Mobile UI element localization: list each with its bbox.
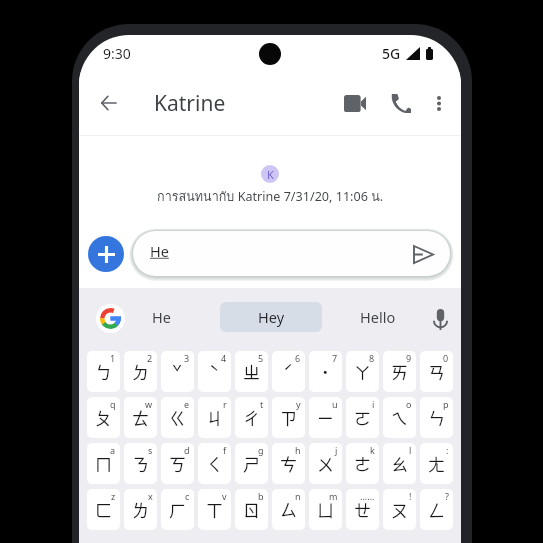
staticText: ㄠ <box>391 451 408 476</box>
staticText: ...... <box>360 490 375 502</box>
staticText: 1 <box>110 352 116 364</box>
staticText: ㄣ <box>428 405 445 430</box>
staticText: c <box>185 490 190 502</box>
button[interactable]: ㄏ <box>161 489 194 530</box>
staticText: r <box>223 398 227 410</box>
button[interactable]: ㄚ <box>346 351 379 392</box>
button[interactable]: ˙ <box>309 351 342 392</box>
staticText: u <box>332 398 338 410</box>
button[interactable]: ㄍ <box>161 397 194 438</box>
staticText: ㄐ <box>206 405 223 430</box>
staticText: j <box>335 444 338 456</box>
staticText: l <box>409 444 412 456</box>
button[interactable]: ㄋ <box>124 443 157 484</box>
staticText: He <box>150 241 169 261</box>
button[interactable]: Back <box>92 87 124 119</box>
staticText: 5G <box>382 44 401 63</box>
button[interactable]: Google <box>96 304 125 333</box>
staticText: p <box>443 398 449 410</box>
button[interactable]: He <box>117 302 205 332</box>
button[interactable]: ㄅ <box>87 351 120 392</box>
staticText: w <box>145 398 153 410</box>
button[interactable]: ㄟ <box>383 397 416 438</box>
button[interactable]: ㄑ <box>198 443 231 484</box>
staticText: ㄒ <box>206 497 223 522</box>
staticText: ㄟ <box>391 405 408 430</box>
button[interactable]: ㄐ <box>198 397 231 438</box>
button[interactable]: ㄆ <box>87 397 120 438</box>
button[interactable]: ㄗ <box>272 397 305 438</box>
staticText: Hello <box>360 307 396 327</box>
staticText: b <box>258 490 264 502</box>
button[interactable]: ㄙ <box>272 489 305 530</box>
button[interactable]: ㄛ <box>346 397 379 438</box>
button[interactable]: ㄡ <box>383 489 416 530</box>
staticText: 6 <box>295 352 301 364</box>
button[interactable]: ㄒ <box>198 489 231 530</box>
button[interactable]: ㄈ <box>87 489 120 530</box>
button[interactable]: ㄖ <box>235 489 268 530</box>
staticText: ! <box>409 490 412 502</box>
staticText: ㄅ <box>95 359 112 384</box>
button[interactable]: Call <box>383 85 419 121</box>
staticText: ㄖ <box>243 497 260 522</box>
staticText: ㄨ <box>317 451 334 476</box>
button[interactable]: He <box>133 231 450 276</box>
staticText: s <box>148 444 153 456</box>
button[interactable]: ㄥ <box>420 489 453 530</box>
staticText: i <box>372 398 375 410</box>
staticText: ㄕ <box>243 451 260 476</box>
staticText: ㄈ <box>95 497 112 522</box>
button[interactable]: ㄞ <box>383 351 416 392</box>
button[interactable]: ㄘ <box>272 443 305 484</box>
button[interactable]: Voice input <box>424 301 456 337</box>
button[interactable]: ㄓ <box>235 351 268 392</box>
button[interactable]: Hey <box>220 302 322 332</box>
staticText: o <box>406 398 412 410</box>
button[interactable]: ㄩ <box>309 489 342 530</box>
staticText: K <box>267 167 274 182</box>
staticText: ㄓ <box>243 359 260 384</box>
staticText: การสนทนากับ Katrine 7/31/20, 11:06 น. <box>157 187 384 207</box>
button[interactable]: Hello <box>334 302 422 332</box>
button[interactable]: ㄧ <box>309 397 342 438</box>
button[interactable]: Send <box>405 236 441 272</box>
staticText: ㄩ <box>317 497 334 522</box>
staticText: e <box>184 398 190 410</box>
staticText: ㄙ <box>280 497 297 522</box>
button[interactable]: ˋ <box>198 351 231 392</box>
staticText: k <box>370 444 375 456</box>
button[interactable]: ㄢ <box>420 351 453 392</box>
staticText: 9:30 <box>103 44 131 63</box>
button[interactable]: ㄉ <box>124 351 157 392</box>
button[interactable]: ㄎ <box>161 443 194 484</box>
button[interactable]: Add attachment <box>88 236 124 272</box>
button[interactable]: ㄊ <box>124 397 157 438</box>
staticText: ㄌ <box>132 497 149 522</box>
button[interactable]: ㄜ <box>346 443 379 484</box>
button[interactable]: Video call <box>337 85 373 121</box>
button[interactable]: ㄌ <box>124 489 157 530</box>
button[interactable]: ㄣ <box>420 397 453 438</box>
staticText: ㄚ <box>354 359 371 384</box>
staticText: ㄏ <box>169 497 186 522</box>
staticText: m <box>329 490 338 502</box>
staticText: ㄛ <box>354 405 371 430</box>
button[interactable]: ˇ <box>161 351 194 392</box>
staticText: 2 <box>147 352 153 364</box>
button[interactable]: ㄤ <box>420 443 453 484</box>
button[interactable]: ㄨ <box>309 443 342 484</box>
staticText: v <box>222 490 227 502</box>
staticText: a <box>110 444 116 456</box>
button[interactable]: ㄠ <box>383 443 416 484</box>
staticText: ㄘ <box>280 451 297 476</box>
button[interactable]: ㄕ <box>235 443 268 484</box>
staticText: ㄑ <box>206 451 223 476</box>
button[interactable]: ㄝ <box>346 489 379 530</box>
button[interactable]: ㄔ <box>235 397 268 438</box>
staticText: ㄎ <box>169 451 186 476</box>
button[interactable]: More options <box>423 87 455 119</box>
staticText: y <box>296 398 301 410</box>
button[interactable]: ˊ <box>272 351 305 392</box>
button[interactable]: ㄇ <box>87 443 120 484</box>
